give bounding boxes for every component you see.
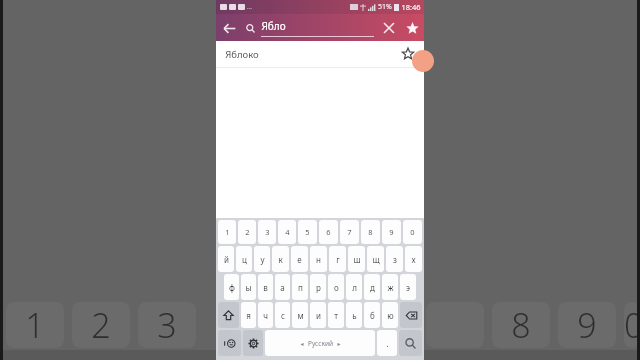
button[interactable]: л [346, 274, 362, 300]
staticText: Яблоко [225, 48, 259, 61]
button[interactable]: ь [346, 302, 362, 328]
button[interactable]: ш [348, 246, 365, 272]
button[interactable]: ж [382, 274, 398, 300]
button[interactable]: ы [241, 274, 256, 300]
staticText: 5 [305, 227, 310, 237]
staticText: ц [242, 254, 247, 265]
button[interactable]: Shift [218, 302, 239, 328]
button[interactable]: и [310, 302, 326, 328]
staticText: 2 [245, 227, 250, 237]
staticText: и [316, 310, 321, 321]
button[interactable]: 9 [382, 220, 401, 244]
button[interactable]: г [329, 246, 346, 272]
button[interactable]: Back [216, 15, 242, 41]
staticText: 4 [285, 227, 290, 237]
staticText: 1 [25, 302, 45, 348]
button[interactable]: Search [399, 330, 422, 356]
button[interactable]: а [275, 274, 290, 300]
staticText: 18:46 [401, 2, 421, 12]
staticText: й [224, 254, 229, 265]
button[interactable]: к [272, 246, 289, 272]
button[interactable]: й [218, 246, 234, 272]
staticText: ◂ [300, 340, 304, 347]
button[interactable]: е [291, 246, 308, 272]
button[interactable]: 3 [258, 220, 276, 244]
staticText: ю [387, 310, 394, 321]
button[interactable]: щ [367, 246, 384, 272]
button[interactable]: р [310, 274, 326, 300]
button[interactable]: Яблоко [216, 41, 424, 67]
staticText: з [393, 254, 397, 265]
button[interactable]: п [292, 274, 308, 300]
staticText: г [336, 254, 340, 265]
button[interactable]: 8 [361, 220, 380, 244]
button[interactable]: Clear query [378, 15, 400, 41]
staticText: т [334, 310, 338, 321]
staticText: л [352, 282, 357, 293]
staticText: х [411, 254, 416, 265]
button[interactable]: д [364, 274, 380, 300]
button[interactable]: у [254, 246, 270, 272]
button[interactable]: м [292, 302, 308, 328]
staticText: м [297, 310, 304, 321]
button[interactable]: Backspace [400, 302, 422, 328]
button[interactable]: 5 [298, 220, 317, 244]
button[interactable]: ю [382, 302, 398, 328]
staticText: щ [372, 254, 380, 265]
button[interactable]: 4 [278, 220, 296, 244]
button[interactable]: с [275, 302, 290, 328]
staticText: е [297, 254, 302, 265]
button[interactable]: Add to favorites [400, 46, 416, 62]
staticText: . [386, 338, 389, 349]
button[interactable]: Favorites [400, 15, 424, 41]
staticText: п [298, 282, 303, 293]
staticText: ф [229, 282, 235, 293]
button[interactable]: т [328, 302, 344, 328]
button[interactable]: ч [258, 302, 273, 328]
staticText: у [260, 254, 265, 265]
button[interactable]: Symbols and emoji [218, 330, 241, 356]
staticText: 9 [389, 227, 394, 237]
staticText: 2 [91, 302, 111, 348]
staticText: ы [245, 282, 252, 293]
staticText: 3 [157, 302, 177, 348]
staticText: э [406, 282, 410, 293]
staticText: 8 [511, 302, 531, 348]
button[interactable]: я [241, 302, 256, 328]
staticText: Русский [308, 339, 333, 348]
button[interactable]: ◂ [265, 330, 375, 356]
staticText: 9 [577, 302, 597, 348]
button[interactable]: 0 [403, 220, 422, 244]
button[interactable]: 6 [319, 220, 338, 244]
button[interactable]: Add [412, 50, 434, 72]
button[interactable]: з [386, 246, 403, 272]
button[interactable]: ф [224, 274, 239, 300]
button[interactable]: 2 [238, 220, 256, 244]
button[interactable]: Keyboard settings [243, 330, 263, 356]
staticText: ▸ [337, 340, 341, 347]
button[interactable]: х [405, 246, 422, 272]
staticText: Ябло [261, 19, 286, 33]
button[interactable]: н [310, 246, 327, 272]
button[interactable]: 7 [340, 220, 359, 244]
staticText: б [370, 310, 375, 321]
staticText: я [246, 310, 251, 321]
staticText: 51% [378, 2, 392, 12]
staticText: 6 [326, 227, 331, 237]
button[interactable]: о [328, 274, 344, 300]
staticText: д [370, 282, 375, 293]
staticText: ч [263, 310, 268, 321]
staticText: 3 [265, 227, 270, 237]
staticText: 8 [368, 227, 373, 237]
button[interactable]: э [400, 274, 416, 300]
staticText: р [316, 282, 321, 293]
button[interactable]: ц [236, 246, 252, 272]
staticText: ь [352, 310, 357, 321]
button[interactable]: б [364, 302, 380, 328]
staticText: 0 [410, 227, 415, 237]
staticText: с [281, 310, 285, 321]
button[interactable]: 1 [218, 220, 236, 244]
button[interactable]: . [377, 330, 397, 356]
staticText: ... [247, 3, 252, 11]
button[interactable]: в [258, 274, 273, 300]
